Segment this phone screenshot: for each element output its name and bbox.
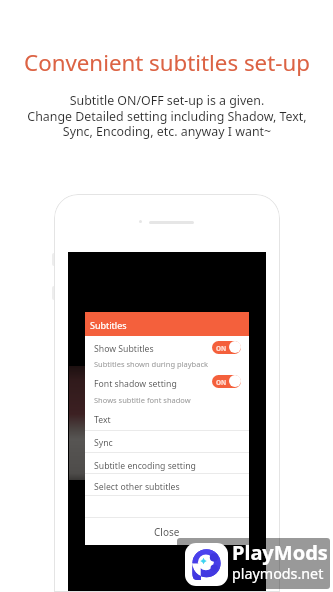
button[interactable]: Text xyxy=(85,408,249,430)
staticText: Subtitle encoding setting xyxy=(94,460,196,472)
button[interactable]: Font shadow setting xyxy=(85,370,249,405)
staticText: Text xyxy=(94,414,111,426)
staticText: ON xyxy=(216,378,227,387)
staticText: Shows subtitle font shadow xyxy=(94,395,191,405)
staticText: PlayMods xyxy=(232,539,328,566)
staticText: playmods.net xyxy=(232,564,324,583)
button[interactable]: Show Subtitles xyxy=(85,336,249,371)
staticText: ON xyxy=(216,344,227,353)
button[interactable]: Subtitle encoding setting xyxy=(85,453,249,475)
button[interactable]: Subtitles xyxy=(85,312,249,336)
staticText: Select other subtitles xyxy=(94,481,180,493)
staticText: Convenient subtitles set-up xyxy=(24,47,310,77)
button[interactable]: Sync xyxy=(85,431,249,453)
staticText: Show Subtitles xyxy=(94,343,154,355)
button[interactable]: Toggle subtitles on xyxy=(212,341,241,354)
button[interactable]: Select other subtitles xyxy=(85,474,249,496)
staticText: Subtitles shown during playback xyxy=(94,359,208,369)
button[interactable]: Toggle subtitles on xyxy=(212,375,241,388)
button[interactable]: Close xyxy=(85,518,249,545)
staticText: Subtitle ON/OFF set-up is a given. Chang… xyxy=(27,92,307,140)
staticText: Subtitles xyxy=(90,319,127,331)
button[interactable]: PlayMods xyxy=(185,543,228,586)
staticText: Close xyxy=(154,525,180,539)
staticText: Sync xyxy=(94,437,113,449)
staticText: Font shadow setting xyxy=(94,378,177,390)
